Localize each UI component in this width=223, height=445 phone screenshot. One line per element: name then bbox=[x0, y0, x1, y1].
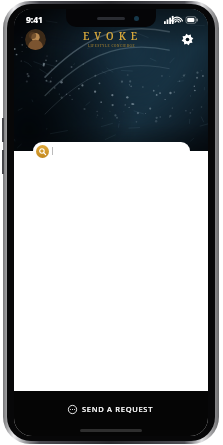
button[interactable]: Settings bbox=[177, 29, 197, 49]
other: Search bbox=[36, 145, 49, 158]
button[interactable]: SEND A REQUEST bbox=[14, 391, 208, 436]
staticText: 9:41 bbox=[26, 14, 43, 26]
button[interactable]: Search bbox=[33, 142, 190, 160]
staticText: SEND A REQUEST bbox=[82, 404, 154, 414]
button[interactable]: Profile bbox=[25, 29, 46, 50]
staticText: LIFESTYLE CONCIERGE bbox=[88, 44, 135, 48]
staticText: E V O K E bbox=[83, 29, 139, 43]
